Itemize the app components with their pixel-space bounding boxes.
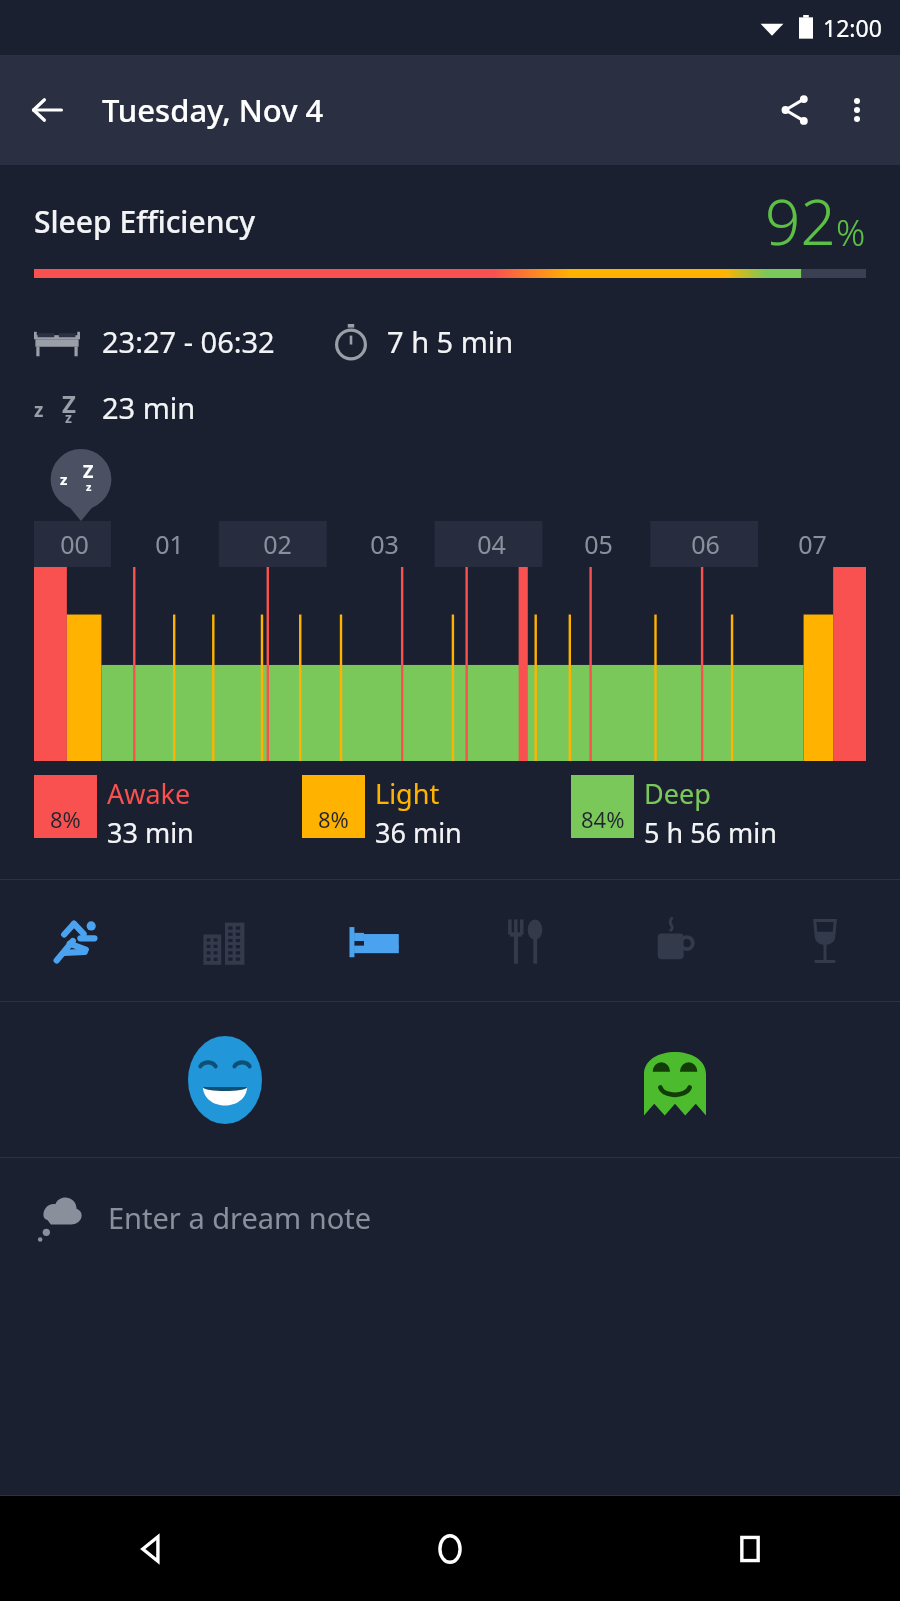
staticText: 84% bbox=[581, 804, 625, 834]
button[interactable]: Ghost bbox=[450, 1002, 900, 1157]
staticText: z bbox=[34, 397, 44, 423]
button[interactable]: Work bbox=[150, 880, 300, 1001]
staticText: 23 min bbox=[102, 388, 196, 427]
staticText: 00 bbox=[60, 527, 89, 561]
button[interactable]: Alcohol bbox=[750, 880, 900, 1001]
button[interactable]: Recent apps bbox=[600, 1496, 900, 1601]
staticText: 01 bbox=[155, 527, 184, 561]
staticText: Z bbox=[83, 459, 94, 484]
button[interactable]: Coffee bbox=[600, 880, 750, 1001]
staticText: Sleep Efficiency bbox=[34, 201, 256, 242]
staticText: Awake bbox=[107, 775, 191, 812]
button[interactable]: Back bbox=[0, 1496, 300, 1601]
staticText: z bbox=[60, 469, 68, 489]
button[interactable]: Mood happy bbox=[0, 1002, 450, 1157]
staticText: 8% bbox=[50, 804, 81, 834]
staticText: 07 bbox=[798, 527, 827, 561]
button[interactable]: 84% bbox=[571, 775, 880, 851]
staticText: 02 bbox=[263, 527, 292, 561]
button[interactable]: Enter a dream note bbox=[0, 1158, 900, 1333]
button[interactable]: Exercise bbox=[0, 880, 150, 1001]
staticText: 33 min bbox=[107, 814, 194, 851]
staticText: 03 bbox=[370, 527, 399, 561]
staticText: 92 bbox=[765, 179, 836, 263]
staticText: 7 h 5 min bbox=[387, 322, 514, 361]
staticText: Enter a dream note bbox=[108, 1198, 372, 1237]
staticText: Z bbox=[62, 387, 76, 420]
staticText: 04 bbox=[477, 527, 506, 561]
button[interactable]: Sleep bbox=[300, 880, 450, 1001]
button[interactable]: Food bbox=[450, 880, 600, 1001]
staticText: 23:27 - 06:32 bbox=[102, 322, 275, 361]
staticText: Light bbox=[375, 775, 440, 812]
button[interactable]: 8% bbox=[302, 775, 571, 851]
button[interactable]: More options bbox=[826, 79, 888, 141]
button[interactable]: Share bbox=[764, 79, 826, 141]
button[interactable]: Back bbox=[18, 81, 76, 139]
staticText: 8% bbox=[318, 804, 349, 834]
button[interactable]: Home bbox=[300, 1496, 600, 1601]
staticText: 06 bbox=[691, 527, 720, 561]
staticText: % bbox=[836, 208, 866, 257]
button[interactable]: 8% bbox=[34, 775, 302, 851]
staticText: z bbox=[86, 479, 92, 494]
staticText: z bbox=[65, 408, 72, 427]
staticText: 12:00 bbox=[823, 12, 882, 43]
staticText: 36 min bbox=[375, 814, 462, 851]
staticText: 5 h 56 min bbox=[644, 814, 777, 851]
staticText: Deep bbox=[644, 775, 711, 812]
staticText: 05 bbox=[584, 527, 613, 561]
staticText: Tuesday, Nov 4 bbox=[102, 89, 324, 131]
